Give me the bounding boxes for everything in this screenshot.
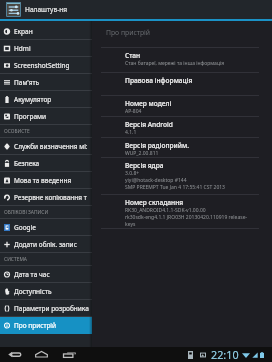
button[interactable]: Безпека	[0, 155, 92, 172]
button[interactable]: Резервне копіювання т	[0, 189, 92, 206]
staticText: WUP_2.00.811	[125, 150, 159, 157]
staticText: Акумулятор	[14, 95, 52, 104]
staticText: Версія Android	[125, 120, 173, 129]
button[interactable]: Правова інформація	[92, 73, 272, 95]
button[interactable]: Google	[0, 219, 92, 236]
button[interactable]: Дата та час	[0, 266, 92, 283]
staticText: Hdmi	[14, 44, 31, 53]
staticText: Стан	[125, 51, 141, 60]
button[interactable]: Hdmi	[0, 40, 92, 57]
staticText: yiyi@hotack-desktop #144	[125, 177, 187, 184]
button[interactable]: Служби визначення мі:	[0, 138, 92, 155]
staticText: Параметри розробника	[14, 304, 89, 313]
staticText: ОБЛІКОВІ ЗАПИСИ	[4, 209, 49, 216]
button[interactable]: Додати облік. запис	[0, 236, 92, 253]
button[interactable]: Recent apps	[63, 347, 76, 362]
staticText: Додати облік. запис	[14, 240, 77, 249]
button[interactable]: Екран	[0, 23, 92, 40]
staticText: SMP PREEMPT Tue Jan 4 17:55:41 CST 2013	[125, 184, 225, 191]
button[interactable]: Пам'ять	[0, 74, 92, 91]
staticText: ScreenshotSetting	[14, 61, 70, 70]
staticText: Номер складання	[125, 198, 184, 207]
staticText: Google	[14, 223, 36, 232]
button[interactable]: Версія ядра	[92, 158, 272, 194]
button[interactable]: Доступність	[0, 283, 92, 300]
staticText: Номер моделі	[125, 99, 172, 108]
staticText: keys	[125, 221, 136, 228]
staticText: Дата та час	[14, 270, 50, 279]
button[interactable]: Back	[8, 347, 21, 362]
staticText: Правова інформація	[125, 76, 193, 85]
button[interactable]: Програми	[0, 108, 92, 125]
staticText: СИСТЕМА	[4, 256, 27, 263]
staticText: Про пристрій	[106, 28, 151, 37]
staticText: Безпека	[14, 159, 40, 168]
staticText: Мова та введення	[14, 176, 72, 185]
button[interactable]: ScreenshotSetting	[0, 57, 92, 74]
staticText: 3.0.8+	[125, 170, 140, 177]
staticText: Екран	[14, 27, 33, 36]
button[interactable]: Акумулятор	[0, 91, 92, 108]
button[interactable]: Про пристрій	[0, 317, 92, 334]
button[interactable]: Номер складання	[92, 195, 272, 228]
button[interactable]: Версія радіоприйм.	[92, 138, 272, 157]
staticText: Налаштув-ня	[25, 5, 68, 14]
staticText: Резервне копіювання т	[14, 193, 87, 202]
staticText: Про пристрій	[14, 321, 57, 330]
button[interactable]: Параметри розробника	[0, 300, 92, 317]
button[interactable]: Стан	[92, 48, 272, 72]
staticText: Пам'ять	[14, 78, 40, 87]
staticText: ОСОБИСТЕ	[4, 128, 30, 135]
button[interactable]: Home	[35, 347, 48, 362]
staticText: 22:10	[211, 347, 239, 362]
button[interactable]: Версія Android	[92, 117, 272, 137]
button[interactable]: Мова та введення	[0, 172, 92, 189]
staticText: Служби визначення мі:	[14, 142, 88, 151]
staticText: Версія ядра	[125, 161, 164, 170]
staticText: RK30_ANDROID4.1.1-SDK-v1.00.00	[125, 207, 206, 214]
staticText: rk30sdk-eng4.1.1 JRO03H 20130420.110919 …	[125, 214, 248, 221]
button[interactable]: Номер моделі	[92, 96, 272, 116]
staticText: Стан батареї, мережі та інша інформація	[125, 60, 225, 67]
staticText: Доступність	[14, 287, 52, 296]
staticText: Програми	[14, 112, 47, 121]
button[interactable]: Налаштув-ня	[0, 0, 272, 19]
staticText: 4.1.1	[125, 129, 137, 136]
staticText: AP-804	[125, 108, 142, 115]
staticText: Версія радіоприйм.	[125, 141, 189, 150]
